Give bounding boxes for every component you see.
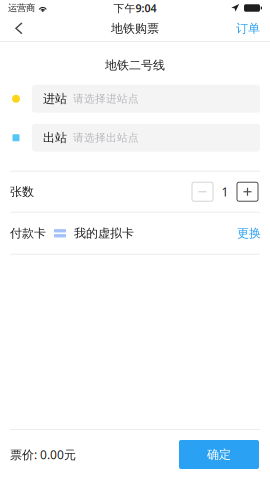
staticText: 地铁二号线 [105,58,165,73]
staticText: 进站 [43,91,67,106]
staticText: 运营商 [8,2,35,14]
staticText: 订单 [236,21,260,36]
staticText: 我的虚拟卡 [74,226,134,241]
button[interactable]: 更换 [237,226,270,241]
staticText: 请选择进站点 [73,92,139,105]
staticText: 付款卡 [10,226,46,241]
button[interactable]: 减少 [192,182,213,201]
staticText: 请选择出站点 [73,131,139,144]
button[interactable]: 进站 [32,85,260,113]
staticText: 更换 [237,226,261,241]
staticText: 票价: 0.00元 [10,446,76,462]
button[interactable]: 增加 [237,182,258,201]
staticText: 1 [221,184,228,200]
button[interactable]: 出站 [32,124,260,152]
staticText: 地铁购票 [111,21,159,36]
button[interactable]: 订单 [228,16,268,40]
staticText: 确定 [207,447,231,462]
staticText: 张数 [10,184,34,199]
button[interactable]: 确定 [179,440,259,469]
staticText: 下午9:04 [113,1,156,15]
staticText: 出站 [43,130,67,145]
button[interactable]: 返回 [1,16,37,41]
